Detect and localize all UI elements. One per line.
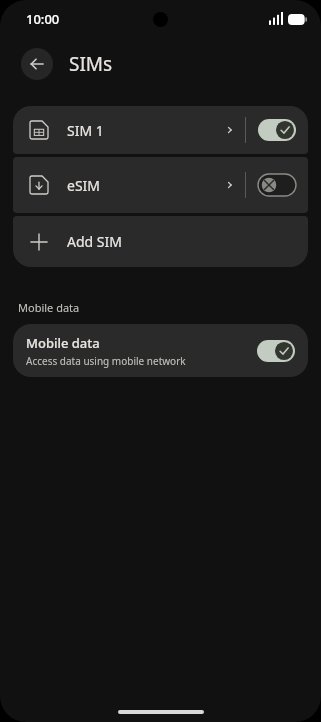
staticText: Access data using mobile network bbox=[26, 354, 186, 368]
button[interactable]: Disable SIM 1 bbox=[246, 106, 308, 154]
button[interactable]: Mobile data bbox=[13, 324, 308, 377]
staticText: Add SIM bbox=[67, 232, 122, 251]
button[interactable]: Add SIM bbox=[13, 216, 308, 267]
staticText: SIM 1 bbox=[67, 121, 225, 140]
staticText: eSIM bbox=[67, 176, 225, 195]
button[interactable]: eSIM bbox=[13, 157, 245, 213]
staticText: Mobile data bbox=[18, 300, 80, 315]
staticText: Mobile data bbox=[26, 334, 100, 352]
button[interactable]: Enable eSIM bbox=[246, 157, 308, 213]
staticText: 10:00 bbox=[26, 10, 60, 28]
button[interactable]: SIM 1 bbox=[13, 106, 245, 154]
staticText: SIMs bbox=[69, 51, 113, 77]
button[interactable]: Back bbox=[21, 48, 53, 80]
